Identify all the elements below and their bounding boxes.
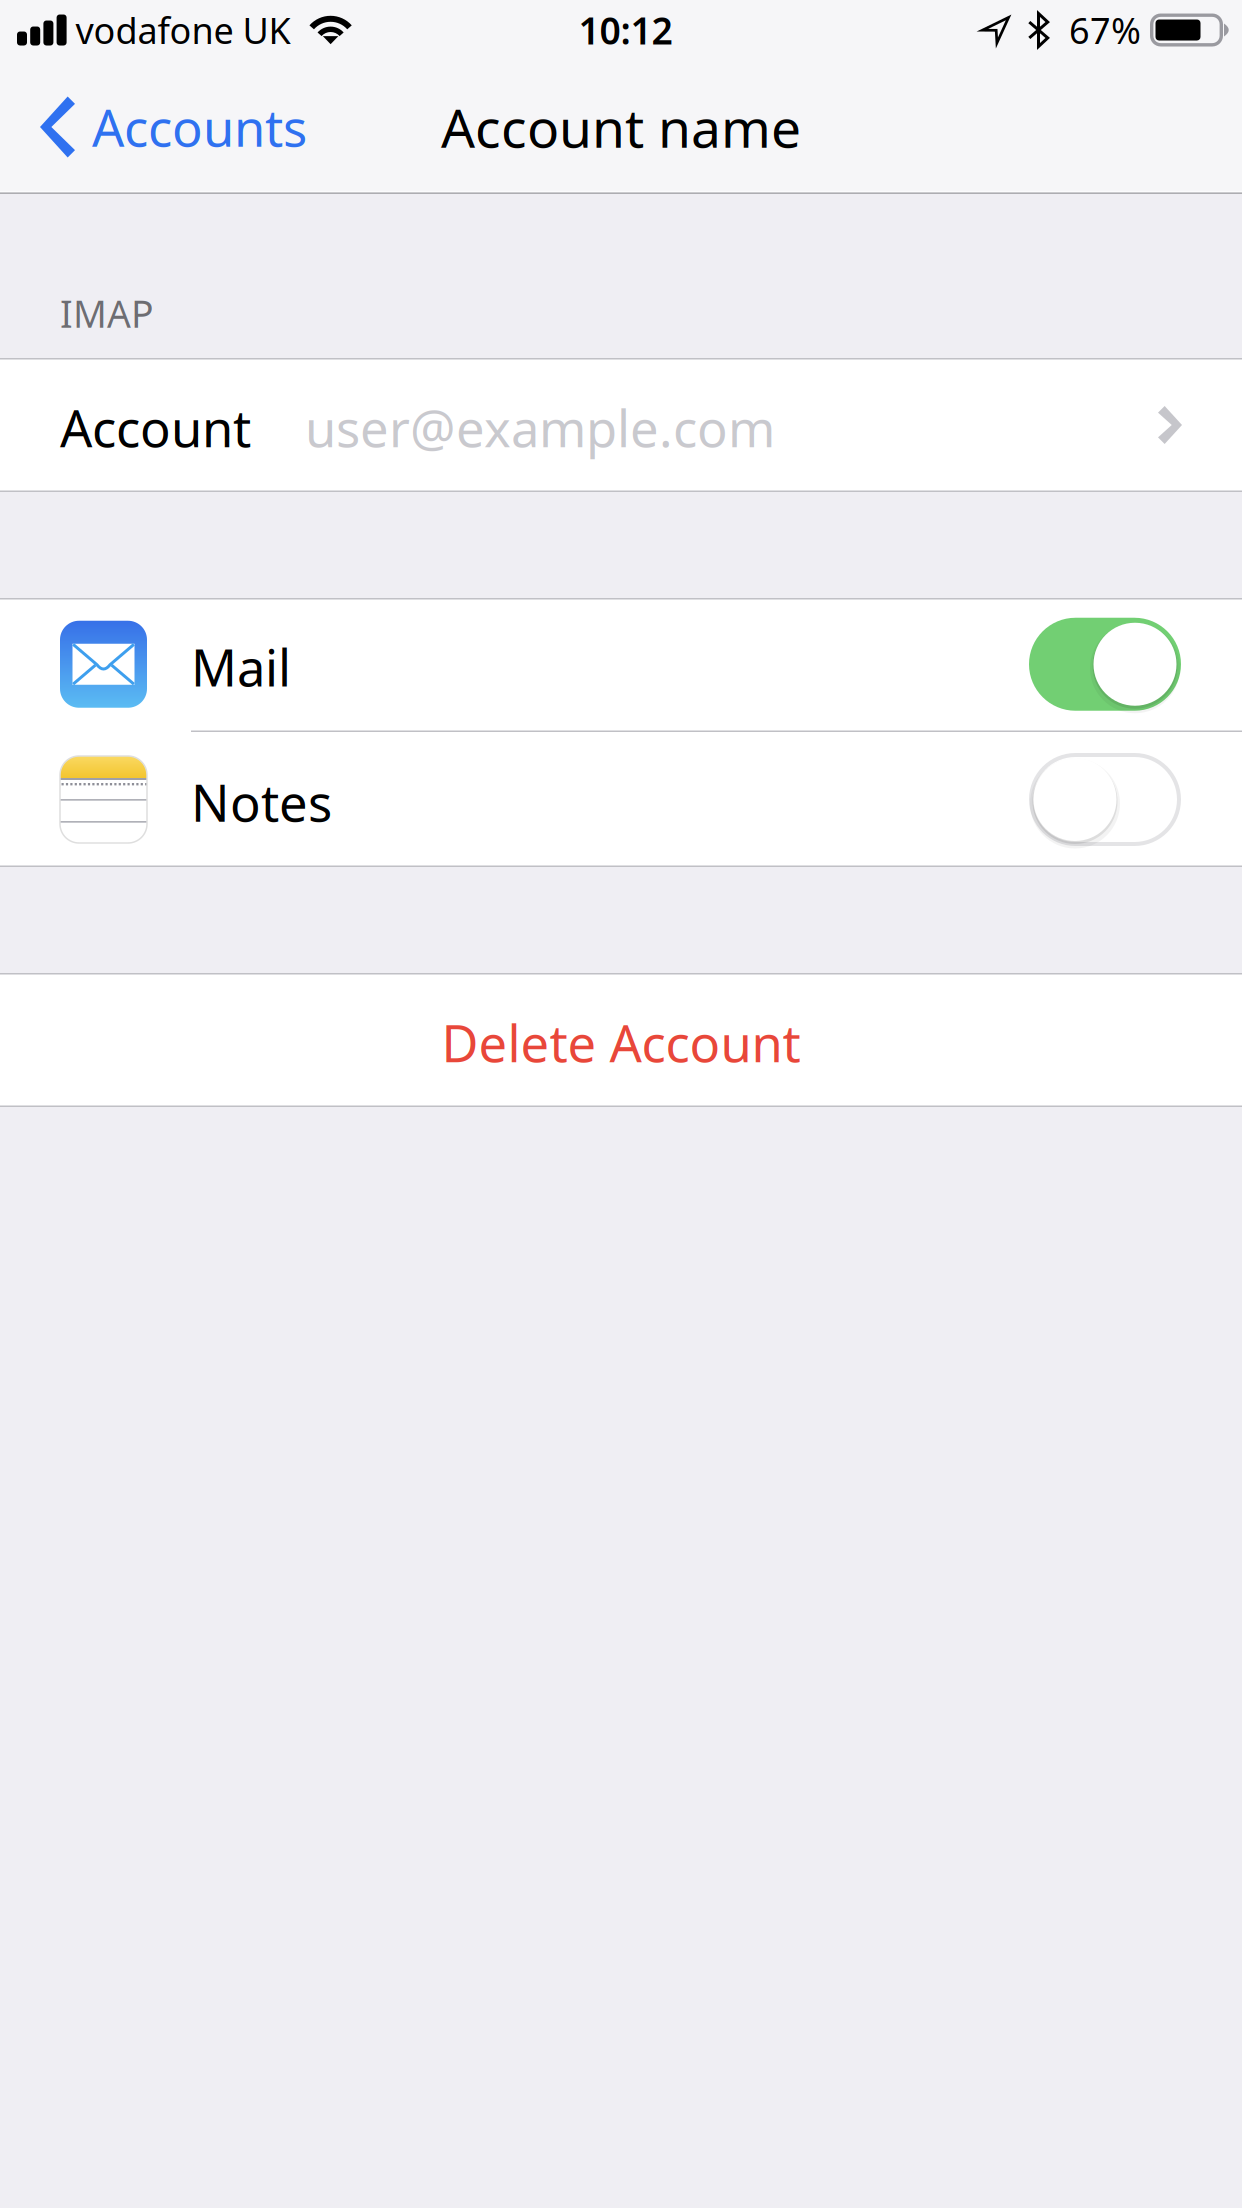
staticText: vodafone UK xyxy=(76,6,291,54)
button[interactable]: Notes xyxy=(0,732,1242,867)
button[interactable]: Mail xyxy=(0,598,1242,732)
staticText: Account name xyxy=(441,92,801,162)
button[interactable]: Delete Account xyxy=(0,973,1242,1107)
staticText: Mail xyxy=(191,633,291,700)
button[interactable]: Account xyxy=(0,358,1242,492)
staticText: 10:12 xyxy=(578,5,672,55)
staticText: 67% xyxy=(1069,6,1141,54)
staticText: IMAP xyxy=(60,288,154,338)
staticText: Notes xyxy=(191,768,332,836)
staticText: Accounts xyxy=(92,93,307,161)
staticText: user@example.com xyxy=(305,394,775,461)
staticText: Delete Account xyxy=(441,1009,800,1076)
staticText: Account xyxy=(60,394,251,461)
button[interactable]: Accounts xyxy=(0,60,360,194)
